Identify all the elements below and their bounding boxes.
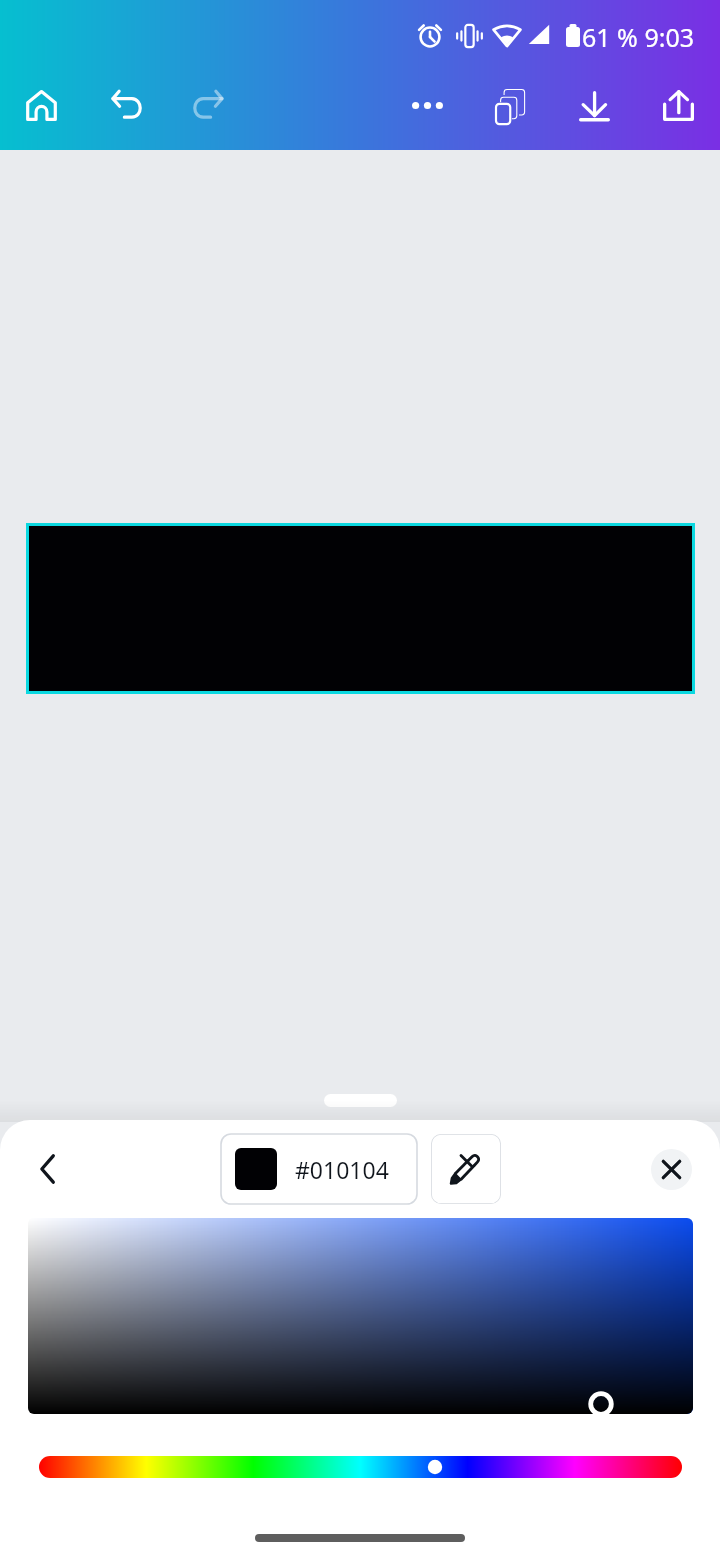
button[interactable]: Home [26, 90, 57, 121]
button[interactable]: Back [26, 1147, 70, 1191]
button[interactable] [28, 1218, 693, 1414]
button[interactable]: Download [579, 91, 610, 122]
button[interactable]: Eyedropper [431, 1134, 501, 1204]
button[interactable]: Share [663, 90, 694, 121]
button[interactable]: Drag handle [324, 1094, 397, 1107]
button[interactable]: Redo [192, 89, 223, 120]
button[interactable]: More options [411, 89, 444, 122]
button[interactable]: Layers [496, 89, 526, 125]
button[interactable] [39, 1456, 682, 1478]
button[interactable]: Close [651, 1149, 692, 1190]
button[interactable]: Undo [112, 89, 143, 120]
staticText: #010104 [295, 1154, 389, 1185]
staticText: 61 % 9:03 [582, 20, 694, 54]
button[interactable]: #010104 [221, 1134, 417, 1204]
